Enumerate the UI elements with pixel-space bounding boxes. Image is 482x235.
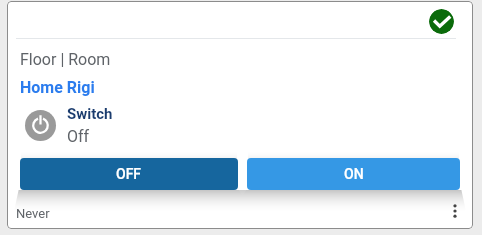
button[interactable]: ON	[247, 158, 460, 190]
button[interactable]: Home Rigi	[20, 78, 95, 97]
staticText: Off	[67, 127, 90, 146]
button[interactable]: OFF	[20, 158, 238, 190]
staticText: OFF	[116, 166, 142, 182]
staticText: ON	[344, 166, 364, 182]
staticText: Switch	[67, 105, 113, 123]
button[interactable]: Status OK	[429, 9, 454, 34]
staticText: Never	[16, 206, 50, 221]
button[interactable]: More options	[444, 200, 466, 222]
staticText: Floor | Room	[20, 50, 111, 69]
